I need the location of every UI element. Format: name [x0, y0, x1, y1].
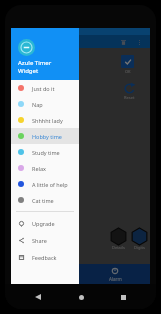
button[interactable]: Upgrade — [11, 215, 79, 232]
button[interactable]: Background — [33, 228, 56, 250]
staticText: A little of help — [32, 181, 68, 188]
button[interactable]: Delete — [118, 37, 128, 47]
staticText: Details — [112, 245, 125, 250]
button[interactable]: Back — [29, 288, 47, 306]
staticText: 00 — [33, 70, 48, 88]
button[interactable]: Feedback — [11, 249, 79, 266]
staticText: Relax — [32, 165, 46, 172]
staticText: Just do it — [32, 85, 55, 92]
staticText: Feedback — [32, 254, 57, 261]
staticText: Reset — [124, 95, 135, 100]
button[interactable]: Home — [72, 288, 90, 306]
button[interactable]: More options — [134, 37, 144, 47]
staticText: Nap — [32, 101, 43, 108]
staticText: Study time — [32, 149, 60, 156]
button[interactable]: Details — [110, 228, 127, 250]
button[interactable]: Share — [11, 232, 79, 249]
button[interactable]: Shape — [13, 228, 30, 250]
staticText: Azule Timer Widget — [18, 59, 52, 75]
button[interactable]: OK — [121, 55, 134, 74]
button[interactable]: Shhhht lady — [11, 112, 79, 128]
button[interactable]: Hobby time — [11, 128, 79, 144]
button[interactable]: Just do it — [11, 80, 79, 96]
staticText: Share — [32, 237, 47, 244]
button[interactable]: Digits — [131, 228, 148, 250]
button[interactable] — [79, 28, 150, 284]
staticText: Hobby time — [32, 133, 62, 140]
button[interactable]: A little of help — [11, 176, 79, 192]
button[interactable]: Relax — [11, 160, 79, 176]
button[interactable]: Style — [11, 264, 80, 284]
button[interactable]: Study time — [11, 144, 79, 160]
staticText: OK — [125, 69, 131, 74]
staticText: Alarm — [109, 276, 122, 282]
staticText: Upgrade — [32, 220, 55, 227]
button[interactable]: Recents — [114, 288, 132, 306]
button[interactable]: Nap — [11, 96, 79, 112]
staticText: Digits — [134, 245, 145, 250]
button[interactable]: Azule Timer Widget — [11, 28, 79, 80]
staticText: Cat time — [32, 197, 54, 204]
staticText: Shhhht lady — [32, 117, 63, 124]
button[interactable]: Cat time — [11, 192, 79, 208]
button[interactable]: Reset — [123, 82, 136, 100]
button[interactable]: Alarm — [80, 264, 150, 284]
